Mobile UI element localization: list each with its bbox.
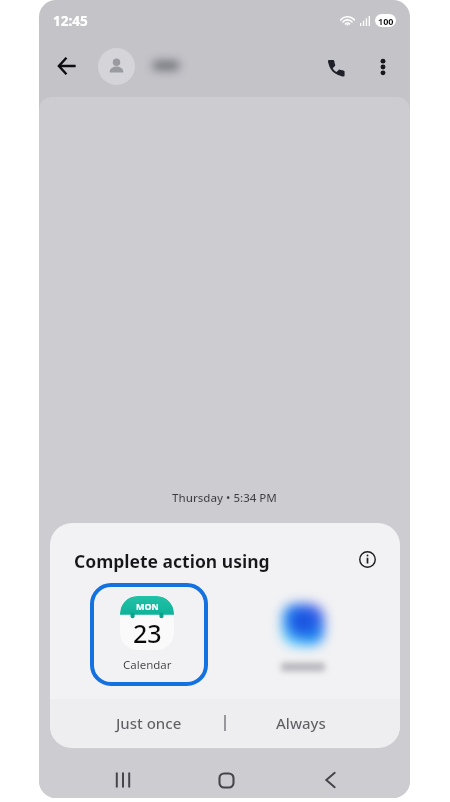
button[interactable]: Home [206,763,246,797]
staticText: 100 [378,15,394,27]
button[interactable]: Info [352,544,383,575]
button[interactable]: Always [226,699,400,747]
button[interactable]: MON [90,583,208,686]
button[interactable]: Just once [50,699,224,747]
staticText: Calendar [123,657,172,673]
button[interactable]: More options [361,45,405,89]
staticText: Complete action using [74,549,270,573]
staticText: Just once [116,713,182,733]
staticText: 12:45 [53,12,88,30]
button[interactable]: Back [310,763,350,797]
staticText: 23 [133,616,162,650]
button[interactable]: Back [45,44,89,88]
staticText: MON [136,600,159,612]
button[interactable]: Recent apps [103,763,143,797]
staticText: Thursday • 5:34 PM [172,490,277,506]
staticText: Always [276,713,326,733]
button[interactable]: Call [314,45,358,89]
button[interactable]: Other app [280,583,398,686]
